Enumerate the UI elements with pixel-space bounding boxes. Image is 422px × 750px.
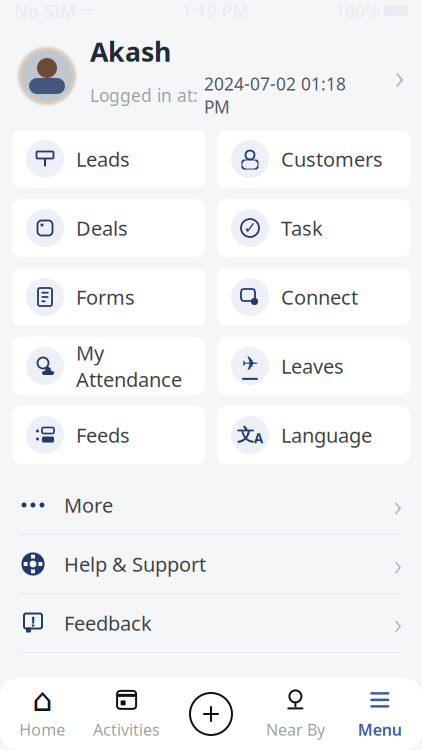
staticText: › [394,485,402,524]
staticText: 1:19 PM [181,0,248,22]
staticText: Menu [358,719,402,740]
staticText: Akash [90,34,171,69]
button[interactable]: More [20,476,402,534]
button[interactable]: Feeds [12,406,205,464]
button[interactable]: Add [169,678,253,750]
staticText: › [395,53,404,99]
staticText: 100% [335,0,380,22]
staticText: Logged in at: [90,84,198,107]
staticText: 文 [237,424,254,446]
button[interactable]: My Attendance [12,337,205,395]
staticText: More [64,492,113,518]
staticText: My Attendance [76,339,182,392]
staticText: No SIM [14,0,76,22]
staticText: Leaves [281,353,344,379]
button[interactable]: ✈ [217,337,410,395]
staticText: ! [31,611,35,631]
staticText: Home [19,719,65,740]
staticText: ✓ [243,219,256,237]
staticText: ⌂ [32,682,52,718]
button[interactable]: Deals [12,199,205,257]
staticText: › [394,544,402,583]
staticText: Deals [76,215,128,241]
staticText: A [254,429,263,447]
staticText: ✈ [241,352,258,375]
button[interactable]: Akash [0,22,422,130]
staticText: Forms [76,284,135,310]
button[interactable]: ! [20,594,402,652]
staticText: Near By [266,719,325,740]
button[interactable]: Near By [253,678,338,750]
button[interactable]: Forms [12,268,205,326]
staticText: Task [281,215,323,241]
staticText: Customers [281,146,383,172]
staticText: Help & Support [64,551,206,577]
button[interactable]: Leads [12,130,205,188]
button[interactable]: Connect [217,268,410,326]
staticText: Leads [76,146,130,172]
button[interactable]: Customers [217,130,410,188]
button[interactable]: Help & Support [20,535,402,593]
staticText: Connect [281,284,358,310]
staticText: 2024-07-02 01:18 PM [204,72,346,118]
button[interactable]: Menu [338,678,422,750]
staticText: Activities [93,719,160,740]
staticText: Feedback [64,610,152,636]
staticText: › [394,603,402,642]
button[interactable]: 文 [217,406,410,464]
staticText: Feeds [76,422,130,448]
button[interactable]: Activities [84,678,169,750]
button[interactable]: ⌂ [0,678,84,750]
staticText: Language [281,422,372,448]
button[interactable]: ✓ [217,199,410,257]
